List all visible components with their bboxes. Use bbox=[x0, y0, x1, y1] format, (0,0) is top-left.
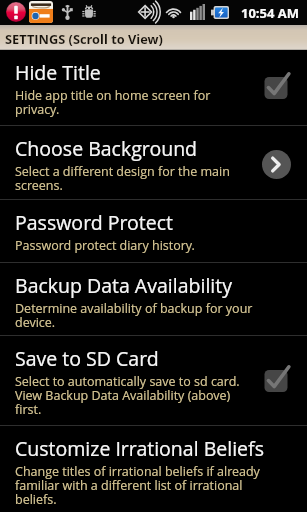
staticText: Hide Title bbox=[15, 59, 101, 86]
staticText: Password protect diary history. bbox=[15, 239, 195, 253]
button[interactable]: Backup Data Availability bbox=[0, 263, 307, 335]
staticText: 10:54 AM bbox=[241, 4, 299, 22]
staticText: Password Protect bbox=[15, 209, 173, 236]
staticText: Backup Data Availability bbox=[15, 272, 232, 299]
button[interactable]: Password Protect bbox=[0, 200, 307, 262]
button[interactable]: Choose Background bbox=[0, 126, 307, 199]
button[interactable]: Toggle setting bbox=[250, 361, 302, 401]
staticText: Save to SD Card bbox=[15, 345, 159, 372]
button[interactable]: Open choose background bbox=[250, 144, 302, 184]
staticText: Customize Irrational Beliefs bbox=[15, 435, 264, 462]
button[interactable]: Customize Irrational Beliefs bbox=[0, 426, 307, 512]
staticText: Hide app title on home screen for privac… bbox=[15, 89, 250, 117]
staticText: SETTINGS (Scroll to View) bbox=[5, 30, 163, 47]
staticText: Select a different design for the main s… bbox=[15, 165, 250, 193]
staticText: Change titles of irrational beliefs if a… bbox=[15, 465, 287, 505]
staticText: Choose Background bbox=[15, 135, 198, 162]
button[interactable]: Save to SD Card bbox=[0, 336, 307, 425]
button[interactable]: Hide Title bbox=[0, 50, 307, 125]
staticText: Select to automatically save to sd card.… bbox=[15, 375, 250, 417]
staticText: Determine availability of backup for you… bbox=[15, 302, 287, 330]
button[interactable]: Toggle setting bbox=[250, 68, 302, 108]
